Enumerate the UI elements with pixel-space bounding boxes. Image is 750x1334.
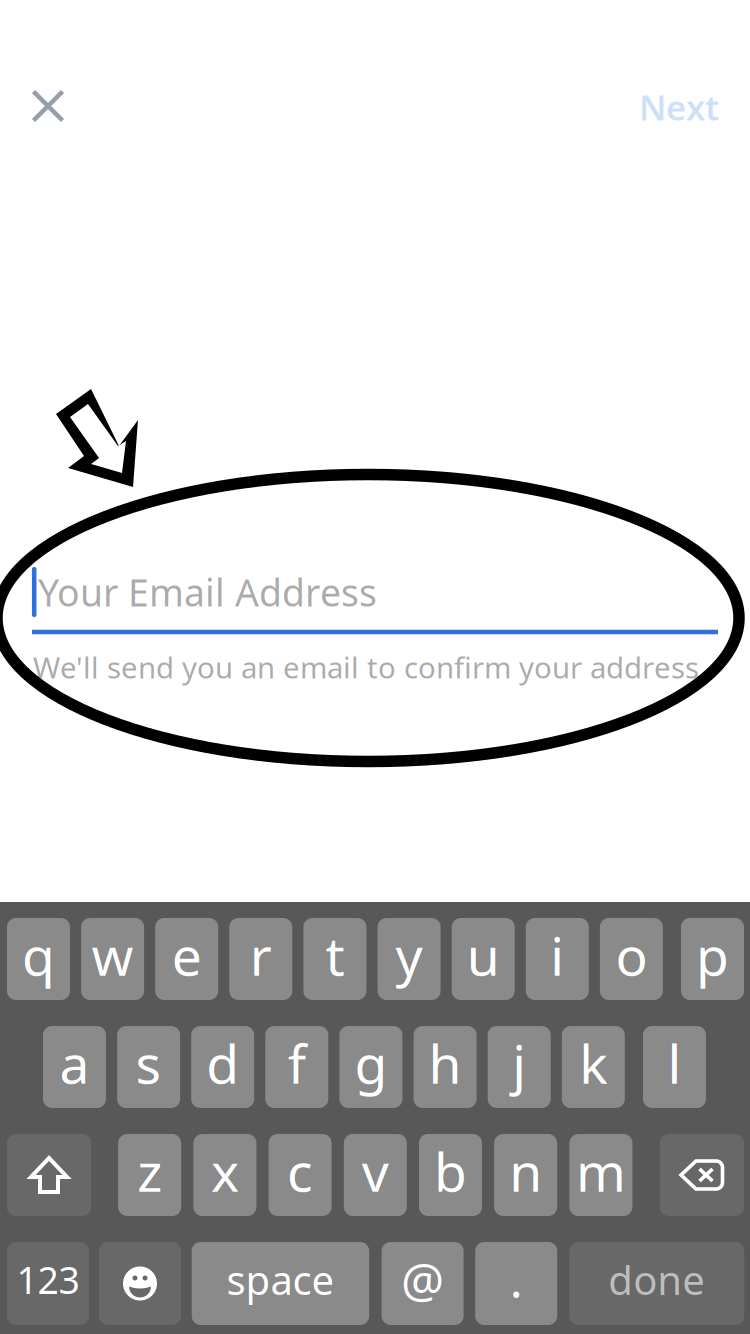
button[interactable]: Your Email Address [0, 528, 750, 728]
staticText: d [206, 1028, 239, 1098]
button[interactable]: Close [15, 73, 80, 138]
staticText: w [92, 920, 134, 990]
button[interactable]: done [569, 1242, 744, 1325]
button[interactable]: o [600, 918, 663, 1000]
button[interactable]: . [475, 1242, 557, 1325]
staticText: o [615, 920, 647, 990]
button[interactable]: Next [621, 66, 737, 148]
staticText: f [288, 1028, 306, 1098]
button[interactable]: x [193, 1134, 256, 1216]
button[interactable]: f [265, 1026, 328, 1108]
staticText: v [362, 1136, 389, 1206]
staticText: x [211, 1136, 239, 1206]
staticText: z [137, 1136, 162, 1206]
staticText: Next [639, 84, 719, 130]
button[interactable]: e [155, 918, 218, 1000]
staticText: space [226, 1253, 334, 1306]
staticText: s [136, 1028, 162, 1098]
button[interactable]: r [229, 918, 292, 1000]
staticText: a [59, 1028, 89, 1098]
button[interactable]: q [7, 918, 70, 1000]
staticText: Your Email Address [38, 567, 377, 617]
staticText: p [696, 920, 729, 990]
button[interactable]: h [414, 1026, 477, 1108]
button[interactable]: z [118, 1134, 181, 1216]
staticText: g [354, 1028, 387, 1098]
button[interactable]: j [488, 1026, 551, 1108]
button[interactable]: s [117, 1026, 180, 1108]
button[interactable]: 123 [7, 1242, 89, 1325]
button[interactable]: Emoji keyboard [99, 1242, 181, 1325]
staticText: m [576, 1136, 626, 1206]
staticText: We'll send you an email to confirm your … [33, 647, 707, 686]
staticText: done [608, 1253, 705, 1306]
button[interactable]: space [192, 1242, 369, 1325]
button[interactable]: p [681, 918, 744, 1000]
staticText: 123 [16, 1255, 79, 1304]
button[interactable]: l [643, 1026, 706, 1108]
button[interactable]: c [269, 1134, 332, 1216]
button[interactable]: y [378, 918, 441, 1000]
button[interactable]: k [562, 1026, 625, 1108]
button[interactable]: n [494, 1134, 557, 1216]
staticText: c [287, 1136, 313, 1206]
staticText: b [434, 1136, 467, 1206]
staticText: h [429, 1028, 462, 1098]
staticText: e [172, 920, 202, 990]
button[interactable]: g [339, 1026, 402, 1108]
staticText: r [250, 920, 272, 990]
staticText: j [512, 1028, 526, 1098]
button[interactable]: d [191, 1026, 254, 1108]
button[interactable]: Delete [660, 1134, 744, 1216]
button[interactable]: u [452, 918, 515, 1000]
button[interactable]: w [81, 918, 144, 1000]
button[interactable]: @ [382, 1242, 464, 1325]
staticText: n [509, 1136, 542, 1206]
staticText: @ [401, 1248, 444, 1311]
staticText: l [667, 1028, 681, 1098]
button[interactable]: a [43, 1026, 106, 1108]
button[interactable]: t [303, 918, 366, 1000]
button[interactable]: m [569, 1134, 632, 1216]
staticText: . [510, 1248, 523, 1311]
staticText: q [22, 920, 55, 990]
button[interactable]: b [419, 1134, 482, 1216]
button[interactable]: i [526, 918, 589, 1000]
button[interactable]: v [344, 1134, 407, 1216]
staticText: t [325, 920, 344, 990]
button[interactable]: Shift [7, 1134, 91, 1216]
staticText: i [550, 920, 564, 990]
staticText: y [396, 920, 423, 990]
staticText: k [579, 1028, 607, 1098]
staticText: u [467, 920, 500, 990]
